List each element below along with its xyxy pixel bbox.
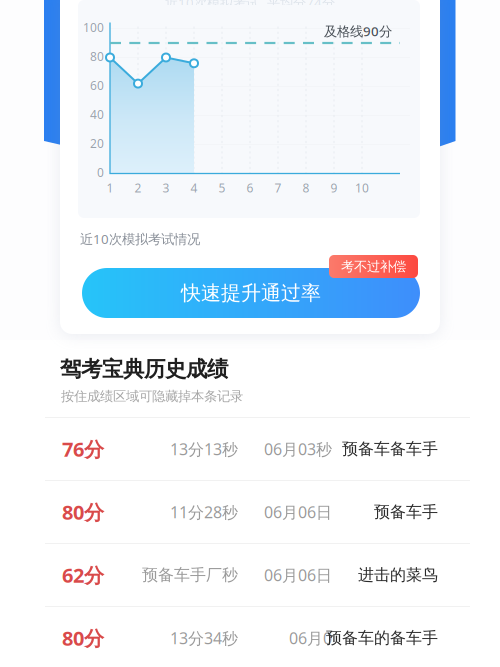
staticText: 13分34秒 xyxy=(170,627,238,649)
staticText: 8 xyxy=(302,180,309,196)
staticText: 80分 xyxy=(62,499,104,525)
button[interactable]: 快速提升通过率 xyxy=(82,268,420,318)
staticText: 06月03秒 xyxy=(264,438,332,460)
staticText: 近10次模拟考试 平均分74分 xyxy=(165,0,335,11)
staticText: 100 xyxy=(83,19,104,35)
staticText: 80分 xyxy=(62,625,104,651)
staticText: 5 xyxy=(218,180,225,196)
staticText: 预备车备车手 xyxy=(342,439,438,459)
staticText: 10 xyxy=(355,180,369,196)
staticText: 近10次模拟考试情况 xyxy=(80,230,200,248)
staticText: 预备车的备车手 xyxy=(326,628,438,648)
button[interactable]: 76分 xyxy=(0,418,500,480)
staticText: 06月0 xyxy=(289,627,332,649)
staticText: 及格线90分 xyxy=(324,22,392,40)
button[interactable]: 80分 xyxy=(0,481,500,543)
staticText: 预备车手 xyxy=(374,502,438,522)
staticText: 9 xyxy=(330,180,337,196)
button[interactable]: 80分 xyxy=(0,607,500,667)
staticText: 40 xyxy=(90,106,104,122)
staticText: 3 xyxy=(162,180,169,196)
button[interactable]: 62分 xyxy=(0,544,500,606)
staticText: 7 xyxy=(274,180,281,196)
staticText: 按住成绩区域可隐藏掉本条记录 xyxy=(61,388,243,404)
staticText: 2 xyxy=(134,180,141,196)
staticText: 62分 xyxy=(62,562,104,588)
staticText: 60 xyxy=(90,77,104,93)
staticText: 1 xyxy=(106,180,113,196)
staticText: 11分28秒 xyxy=(170,501,238,523)
staticText: 76分 xyxy=(62,436,104,462)
staticText: 06月06日 xyxy=(264,501,332,523)
staticText: 4 xyxy=(190,180,197,196)
staticText: 进击的菜鸟 xyxy=(358,565,438,585)
staticText: 80 xyxy=(90,48,104,64)
staticText: 考不过补偿 xyxy=(341,258,406,275)
staticText: 06月06日 xyxy=(264,564,332,586)
staticText: 预备车手厂秒 xyxy=(142,565,238,585)
staticText: 0 xyxy=(97,164,104,180)
staticText: 驾考宝典历史成绩 xyxy=(60,356,228,382)
staticText: 20 xyxy=(90,135,104,151)
staticText: 6 xyxy=(246,180,253,196)
staticText: 快速提升通过率 xyxy=(181,281,321,305)
staticText: 13分13秒 xyxy=(170,438,238,460)
